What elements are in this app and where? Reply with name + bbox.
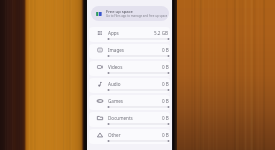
staticText: Other bbox=[108, 132, 121, 138]
button[interactable]: Apps bbox=[89, 27, 170, 42]
staticText: 5.2 GB bbox=[154, 30, 169, 36]
button[interactable]: Audio bbox=[89, 78, 170, 93]
staticText: Audio bbox=[108, 81, 121, 87]
staticText: Images bbox=[108, 47, 125, 53]
button[interactable]: Other bbox=[89, 129, 170, 144]
staticText: Documents bbox=[108, 115, 133, 121]
button[interactable]: Images bbox=[89, 44, 170, 59]
staticText: Games bbox=[108, 98, 124, 104]
button[interactable]: Games bbox=[89, 95, 170, 110]
button[interactable]: Free up space bbox=[91, 6, 169, 21]
button[interactable]: Videos bbox=[89, 61, 170, 76]
button[interactable]: Documents bbox=[89, 112, 170, 127]
staticText: 0 B bbox=[162, 115, 169, 121]
staticText: 0 B bbox=[162, 64, 169, 70]
staticText: 0 B bbox=[162, 81, 169, 87]
staticText: Videos bbox=[108, 64, 123, 70]
staticText: 0 B bbox=[162, 132, 169, 138]
staticText: 0 B bbox=[162, 98, 169, 104]
staticText: Apps bbox=[108, 30, 119, 36]
staticText: 0 B bbox=[162, 47, 169, 53]
staticText: Go to Files app to manage and free up sp… bbox=[106, 14, 167, 18]
staticText: Free up space bbox=[106, 9, 133, 15]
